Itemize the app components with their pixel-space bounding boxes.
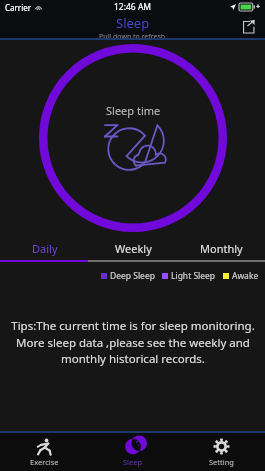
staticText: Setting bbox=[209, 457, 234, 467]
button[interactable]: Share bbox=[237, 15, 259, 37]
staticText: Monthly bbox=[200, 241, 243, 256]
staticText: Sleep bbox=[123, 457, 143, 467]
button[interactable]: Monthly bbox=[177, 236, 265, 260]
button[interactable]: Setting bbox=[177, 433, 265, 471]
staticText: Daily bbox=[32, 241, 58, 256]
button[interactable]: Weekly bbox=[89, 236, 177, 260]
staticText: Carrier bbox=[5, 2, 32, 13]
button[interactable]: Exercise bbox=[0, 433, 89, 471]
button[interactable]: Daily bbox=[0, 236, 89, 260]
staticText: Tips:The current time is for sleep monit… bbox=[11, 318, 255, 366]
staticText: Deep Sleep bbox=[110, 270, 155, 282]
staticText: Light Sleep bbox=[171, 270, 216, 282]
staticText: + bbox=[256, 2, 261, 12]
button[interactable]: Sleep bbox=[89, 433, 177, 471]
staticText: Awake bbox=[232, 270, 259, 282]
staticText: Pull down to refresh bbox=[99, 32, 166, 38]
staticText: Weekly bbox=[115, 241, 152, 256]
staticText: 12:46 AM bbox=[114, 1, 152, 13]
staticText: Sleep bbox=[116, 14, 150, 32]
staticText: Exercise bbox=[30, 457, 59, 467]
staticText: Sleep time bbox=[106, 103, 161, 118]
